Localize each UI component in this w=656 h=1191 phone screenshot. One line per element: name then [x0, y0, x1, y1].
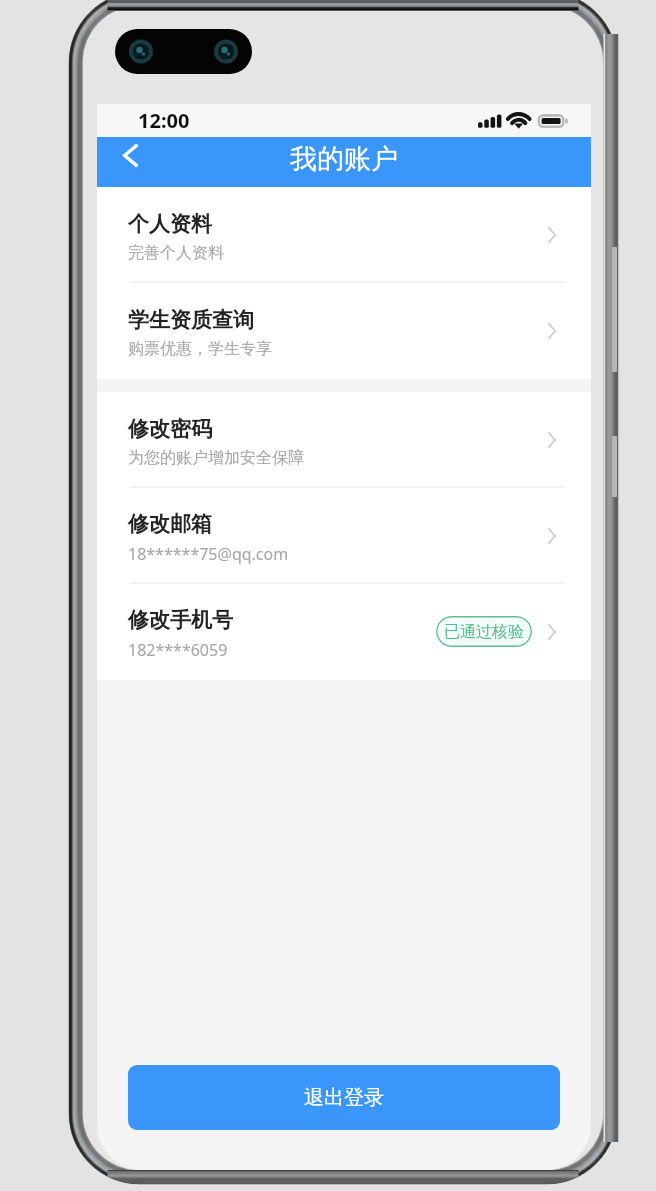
- button[interactable]: 退出登录: [128, 1065, 560, 1130]
- button[interactable]: 修改密码: [97, 392, 591, 488]
- button[interactable]: 学生资质查询: [97, 283, 591, 379]
- staticText: 18******75@qq.com: [128, 543, 289, 565]
- button[interactable]: 修改手机号: [97, 584, 591, 680]
- staticText: 购票优惠，学生专享: [128, 339, 272, 359]
- staticText: 我的账户: [290, 142, 398, 176]
- button[interactable]: Back: [107, 137, 157, 187]
- staticText: 完善个人资料: [128, 243, 224, 263]
- staticText: 182****6059: [128, 639, 228, 661]
- button[interactable]: 个人资料: [97, 187, 591, 283]
- staticText: 已通过核验: [444, 622, 524, 642]
- staticText: 为您的账户增加安全保障: [128, 448, 304, 468]
- button[interactable]: 修改邮箱: [97, 488, 591, 584]
- staticText: 修改邮箱: [128, 511, 212, 537]
- staticText: 学生资质查询: [128, 307, 254, 333]
- staticText: 个人资料: [128, 211, 212, 237]
- staticText: 12:00: [138, 107, 190, 134]
- staticText: 修改手机号: [128, 607, 233, 633]
- staticText: 退出登录: [304, 1085, 384, 1110]
- staticText: 修改密码: [128, 416, 212, 442]
